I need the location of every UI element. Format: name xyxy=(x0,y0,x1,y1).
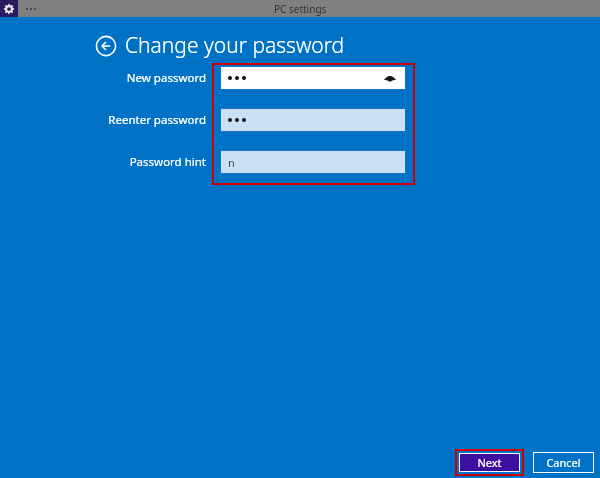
staticText: Reenter password xyxy=(108,112,206,128)
staticText: Cancel xyxy=(546,455,581,470)
staticText: n xyxy=(228,155,398,170)
staticText: New password xyxy=(126,70,206,86)
staticText: Change your password xyxy=(125,31,345,60)
button[interactable]: Show password xyxy=(220,66,406,90)
staticText: PC settings xyxy=(274,2,327,16)
button[interactable]: Cancel xyxy=(533,452,594,473)
button[interactable]: n xyxy=(220,150,406,174)
button[interactable]: Next xyxy=(459,453,520,472)
other: PC settings icon xyxy=(0,0,18,17)
staticText: Password hint xyxy=(129,154,206,170)
button[interactable]: Show password xyxy=(382,70,398,86)
button[interactable]: Back xyxy=(94,34,118,58)
button[interactable] xyxy=(220,108,406,132)
staticText: Next xyxy=(477,455,502,470)
